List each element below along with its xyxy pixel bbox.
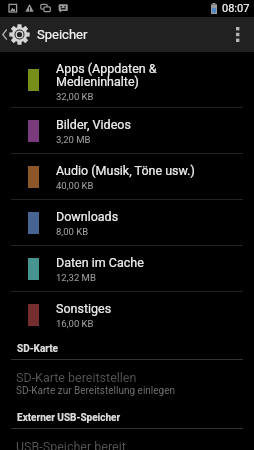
staticText: 8,00 KB [56, 226, 89, 237]
button[interactable]: Audio (Musik, Töne usw.) [0, 154, 254, 199]
staticText: Speicher [37, 27, 88, 42]
staticText: Apps (Appdaten & Medieninhalte) [56, 61, 157, 89]
staticText: Audio (Musik, Töne usw.) [56, 163, 195, 178]
staticText: SD-Karte [17, 343, 58, 355]
staticText: USB-Speicher bereit. [16, 439, 130, 450]
button[interactable]: Sonstiges [0, 292, 254, 337]
staticText: 12,32 MB [56, 272, 96, 283]
staticText: 08:07 [222, 2, 250, 15]
staticText: 3,20 MB [56, 134, 91, 145]
button[interactable]: Downloads [0, 200, 254, 245]
staticText: SD-Karte zur Bereitstellung einlegen [16, 385, 176, 397]
staticText: 32,00 KB [56, 91, 94, 102]
staticText: Daten im Cache [56, 255, 144, 270]
staticText: 16,00 KB [56, 318, 94, 329]
staticText: Externer USB-Speicher [17, 412, 121, 424]
button[interactable]: Apps (Appdaten & Medieninhalte) [0, 52, 254, 107]
button[interactable]: USB-Speicher bereit. [0, 429, 254, 450]
button[interactable]: Weitere Optionen [222, 17, 254, 52]
staticText: Downloads [56, 209, 119, 224]
button[interactable]: Daten im Cache [0, 246, 254, 291]
button[interactable]: SD-Karte bereitstellen [0, 360, 254, 407]
staticText: 40,00 KB [56, 180, 94, 191]
staticText: Bilder, Videos [56, 117, 131, 132]
staticText: Sonstiges [56, 301, 112, 316]
button[interactable]: Zurück [0, 17, 32, 52]
staticText: SD-Karte bereitstellen [16, 370, 137, 385]
button[interactable]: Bilder, Videos [0, 108, 254, 153]
